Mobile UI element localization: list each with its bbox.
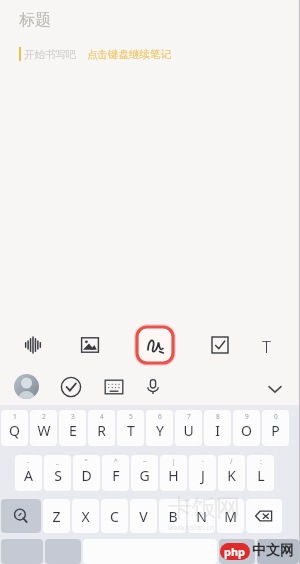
staticText: N	[196, 507, 207, 526]
button[interactable]: Z	[43, 499, 70, 533]
button[interactable]: B	[159, 499, 186, 533]
button[interactable]: X	[72, 499, 99, 533]
button[interactable]: 0	[262, 410, 289, 446]
staticText: I	[215, 421, 220, 440]
staticText: 5	[129, 412, 133, 421]
staticText: ^	[114, 457, 118, 466]
staticText: 2	[42, 412, 46, 421]
button[interactable]: Handwriting	[133, 323, 177, 367]
staticText: E	[69, 421, 77, 440]
staticText: 卡饭网	[168, 493, 240, 523]
button[interactable]: 3	[59, 410, 86, 446]
staticText: 0	[274, 412, 278, 421]
button[interactable]: 2	[30, 410, 57, 446]
staticText: 8	[216, 412, 220, 421]
staticText: www.kafan.cn	[168, 523, 214, 533]
staticText: Z	[52, 507, 61, 526]
button[interactable]: Done	[60, 376, 82, 398]
button[interactable]: :	[247, 455, 274, 491]
button[interactable]: "	[73, 455, 100, 491]
staticText: ·	[202, 457, 204, 466]
staticText: /	[230, 457, 233, 466]
staticText: 中文网	[252, 542, 294, 560]
staticText: Q	[9, 421, 20, 440]
staticText: 4	[100, 412, 104, 421]
button[interactable]: 8	[204, 410, 231, 446]
button[interactable]: 7	[175, 410, 202, 446]
staticText: C	[110, 507, 119, 526]
staticText: T	[262, 335, 272, 358]
staticText: R	[97, 421, 106, 440]
staticText: D	[81, 466, 92, 485]
staticText: 6	[158, 412, 162, 421]
staticText: L	[257, 466, 265, 485]
button[interactable]: 1	[1, 410, 28, 446]
button[interactable]: ·	[189, 455, 216, 491]
button[interactable]: 5	[117, 410, 144, 446]
button[interactable]: Collapse	[265, 379, 285, 399]
button[interactable]: Profile	[14, 374, 39, 399]
button[interactable]: 4	[88, 410, 115, 446]
staticText: B	[168, 507, 178, 526]
staticText: U	[183, 421, 194, 440]
button[interactable]: Voice recording	[19, 331, 47, 359]
button[interactable]: Search	[1, 499, 41, 533]
staticText: A	[24, 466, 33, 485]
staticText: "	[85, 457, 88, 466]
staticText: _	[56, 457, 59, 466]
staticText: Y	[156, 421, 164, 440]
staticText: 点击键盘继续笔记	[87, 48, 171, 61]
button[interactable]: N	[188, 499, 215, 533]
other: Handwriting	[144, 334, 166, 356]
staticText: -	[27, 457, 30, 466]
staticText: 标题	[19, 10, 51, 30]
staticText: 7	[187, 412, 191, 421]
button[interactable]: Backspace	[246, 499, 282, 533]
staticText: S	[54, 466, 62, 485]
staticText: php	[224, 544, 246, 559]
button[interactable]: Voice input	[143, 376, 163, 396]
button[interactable]: 9	[233, 410, 260, 446]
staticText: 开始书写吧	[24, 48, 77, 61]
button[interactable]: Insert image	[76, 331, 104, 359]
button[interactable]: 6	[146, 410, 173, 446]
button[interactable]: Symbols	[1, 539, 43, 564]
button[interactable]: C	[101, 499, 128, 533]
staticText: ~	[143, 457, 147, 466]
button[interactable]: V	[130, 499, 157, 533]
button[interactable]: -	[15, 455, 42, 491]
staticText: H	[168, 466, 179, 485]
button[interactable]: _	[44, 455, 71, 491]
staticText: K	[227, 466, 236, 485]
button[interactable]: Checklist	[206, 331, 234, 359]
button[interactable]: Enter	[257, 539, 299, 564]
staticText: P	[271, 421, 280, 440]
button[interactable]: Keyboard	[104, 377, 124, 397]
button[interactable]: Period	[219, 539, 255, 564]
button[interactable]: ~	[131, 455, 158, 491]
staticText: M	[224, 507, 237, 526]
button[interactable]: /	[218, 455, 245, 491]
staticText: T	[127, 421, 135, 440]
staticText: 9	[245, 412, 249, 421]
staticText: :	[260, 457, 262, 466]
button[interactable]: Text format	[253, 332, 281, 360]
staticText: V	[139, 507, 148, 526]
staticText: X	[81, 507, 90, 526]
staticText: G	[139, 466, 150, 485]
button[interactable]: Comma	[45, 539, 81, 564]
staticText: W	[37, 421, 51, 440]
staticText: 3	[71, 412, 75, 421]
staticText: |	[172, 457, 176, 466]
button[interactable]: ^	[102, 455, 129, 491]
button[interactable]: M	[217, 499, 244, 533]
button[interactable]: |	[160, 455, 187, 491]
staticText: J	[201, 466, 205, 485]
staticText: 1	[13, 412, 17, 421]
staticText: O	[241, 421, 252, 440]
staticText: F	[112, 466, 120, 485]
